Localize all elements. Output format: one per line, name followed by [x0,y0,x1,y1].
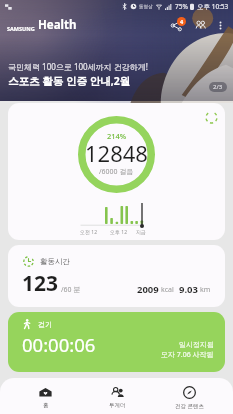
staticText: 오전 12 [80,229,98,236]
button[interactable]: 동영상 [0,0,233,101]
staticText: 모자 7.06 사작됨 [161,350,214,360]
staticText: 2009 [137,283,159,296]
staticText: 일시정지됨 [179,340,214,349]
staticText: 활동시간 [40,257,70,266]
staticText: 홈 [43,402,49,409]
staticText: 국민체력 100으로 100세까지 건강하게! [8,61,148,72]
staticText: 00:00:06 [22,332,96,357]
staticText: km [200,285,211,295]
button[interactable]: Sync [201,107,221,127]
staticText: 스포츠 활동 인증 안내,2월 [8,74,131,88]
staticText: 지금 [136,229,146,235]
staticText: 투게더 [109,402,126,409]
button[interactable]: 홈 [10,378,81,414]
staticText: 동영상 [139,4,153,10]
button[interactable]: 214% [8,103,225,240]
button[interactable]: 건강 콘텐츠 [153,378,225,414]
staticText: 12848 [85,138,148,168]
staticText: kcal [161,285,174,295]
staticText: 오후 10:53 [197,2,229,11]
button[interactable]: Together [189,14,211,36]
button[interactable]: Share [165,14,187,36]
staticText: 214% [107,131,127,141]
staticText: /60 분 [61,285,81,295]
button[interactable]: 투게더 [81,378,153,414]
staticText: 4 [180,18,184,25]
staticText: 2/3 [213,83,223,91]
button[interactable]: 걷기 [8,312,225,372]
staticText: 오후 12 [110,229,128,236]
staticText: 123 [22,269,59,298]
staticText: 걷기 [38,320,52,329]
staticText: SAMSUNG [7,25,35,32]
staticText: 건강 콘텐츠 [175,402,204,410]
button[interactable]: 활동시간 [8,245,225,307]
staticText: Health [38,17,77,33]
staticText: 75% [175,2,188,11]
staticText: 9.03 [179,283,198,296]
button[interactable]: More options [211,16,229,34]
staticText: /6000 걸음 [99,167,134,177]
